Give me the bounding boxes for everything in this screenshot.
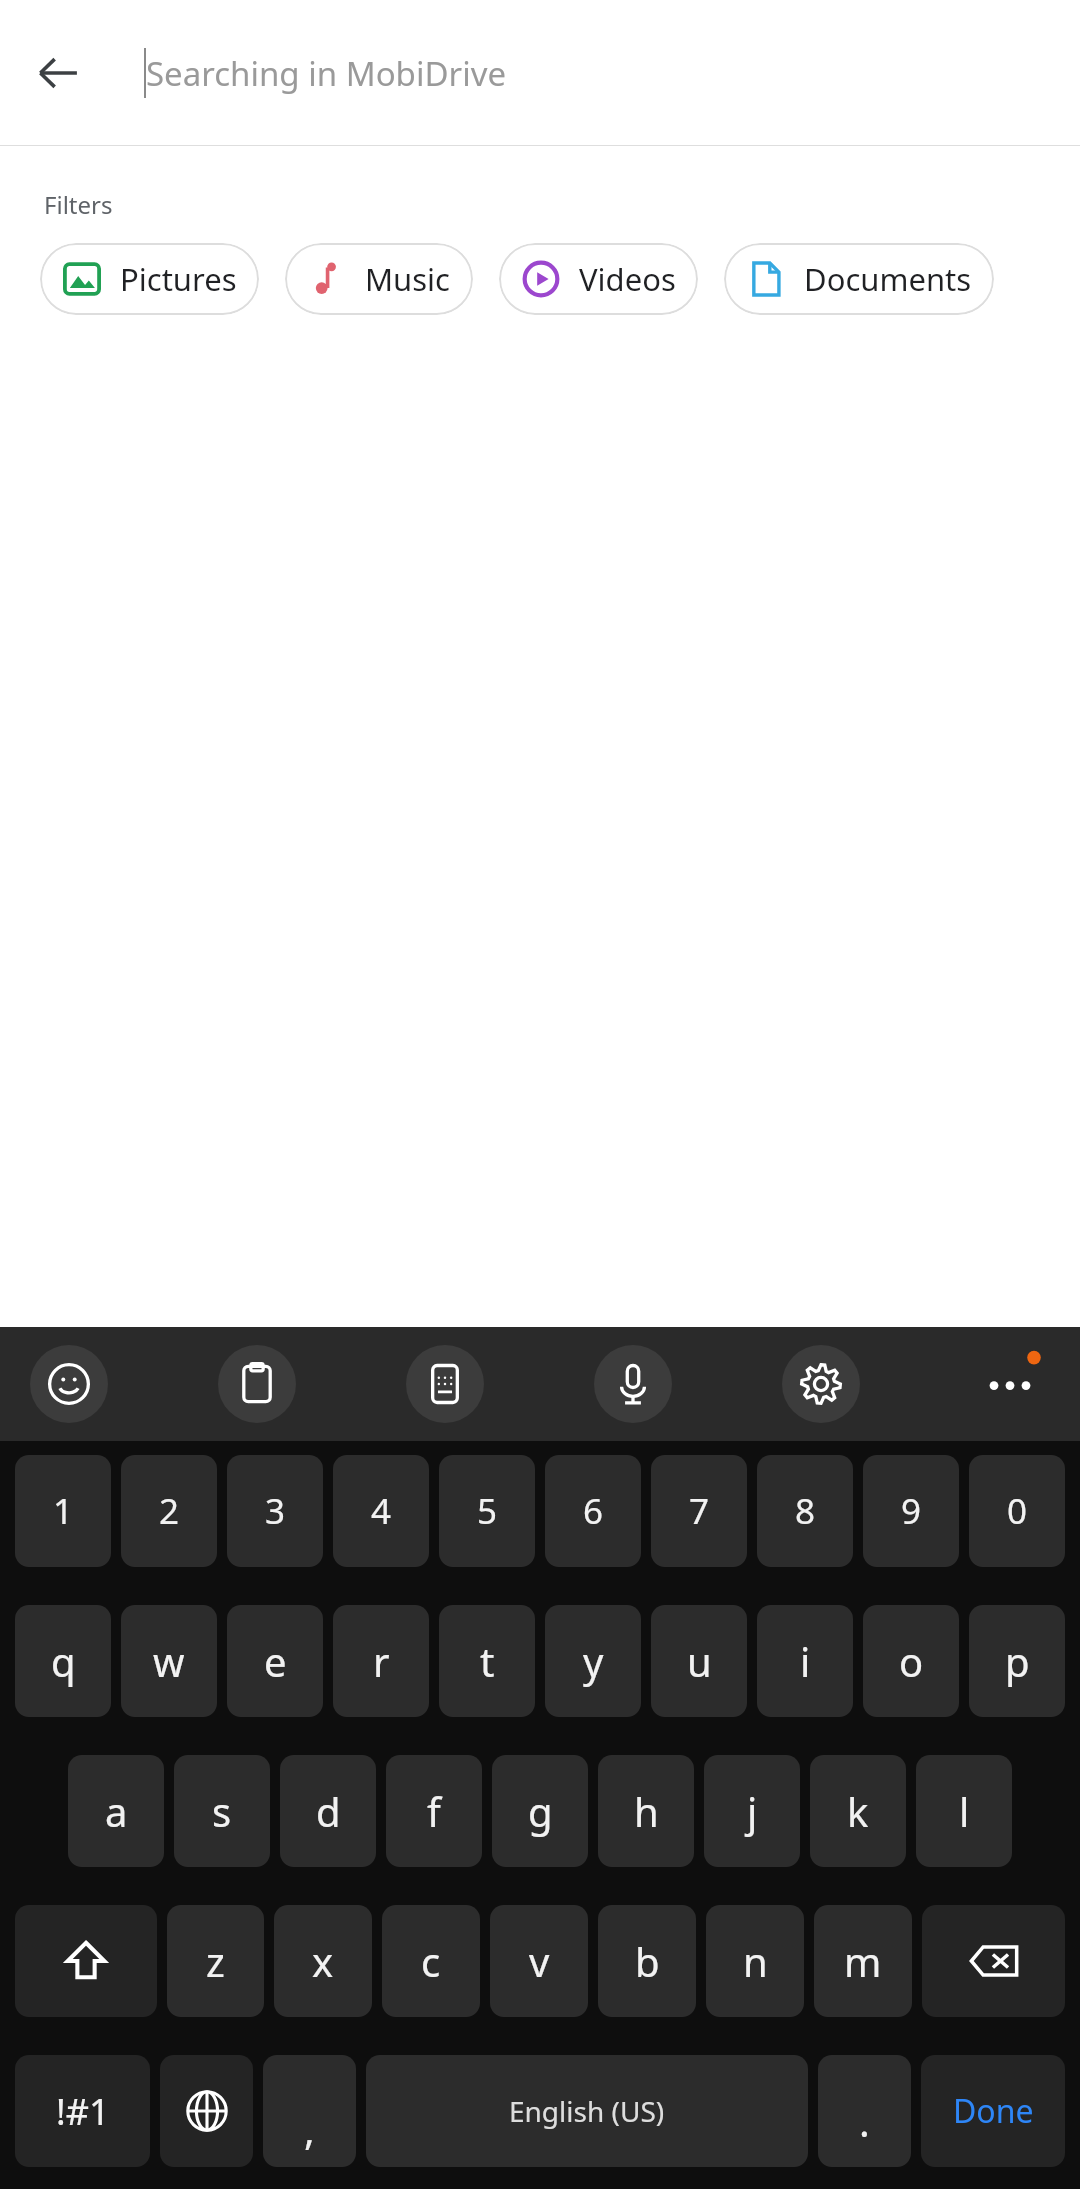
- staticText: n: [743, 1934, 768, 1988]
- staticText: d: [316, 1784, 341, 1838]
- button[interactable]: 8: [757, 1455, 853, 1567]
- staticText: c: [421, 1934, 441, 1988]
- button[interactable]: Done: [921, 2055, 1065, 2167]
- button[interactable]: Voice input: [594, 1345, 672, 1423]
- staticText: s: [212, 1784, 232, 1838]
- button[interactable]: e: [227, 1605, 323, 1717]
- button[interactable]: h: [598, 1755, 694, 1867]
- staticText: p: [1005, 1634, 1030, 1688]
- button[interactable]: g: [492, 1755, 588, 1867]
- staticText: 1: [53, 1487, 74, 1535]
- staticText: z: [206, 1934, 225, 1988]
- staticText: h: [634, 1784, 659, 1838]
- button[interactable]: !#1: [15, 2055, 150, 2167]
- button[interactable]: 1: [15, 1455, 111, 1567]
- button[interactable]: Settings: [782, 1345, 860, 1423]
- staticText: o: [899, 1634, 924, 1688]
- staticText: q: [51, 1634, 76, 1688]
- staticText: 8: [795, 1487, 816, 1535]
- button[interactable]: l: [916, 1755, 1012, 1867]
- button[interactable]: u: [651, 1605, 747, 1717]
- staticText: Done: [953, 2089, 1034, 2133]
- button[interactable]: w: [121, 1605, 217, 1717]
- staticText: Pictures: [120, 258, 237, 300]
- button[interactable]: f: [386, 1755, 482, 1867]
- staticText: u: [687, 1634, 712, 1688]
- button[interactable]: 2: [121, 1455, 217, 1567]
- button[interactable]: 9: [863, 1455, 959, 1567]
- button[interactable]: Back: [22, 37, 94, 109]
- staticText: f: [427, 1784, 441, 1838]
- staticText: Documents: [804, 258, 972, 300]
- staticText: 7: [689, 1487, 710, 1535]
- button[interactable]: m: [814, 1905, 912, 2017]
- button[interactable]: k: [810, 1755, 906, 1867]
- staticText: Music: [365, 258, 451, 300]
- button[interactable]: .: [818, 2055, 911, 2167]
- staticText: l: [959, 1784, 970, 1838]
- button[interactable]: 5: [439, 1455, 535, 1567]
- button[interactable]: t: [439, 1605, 535, 1717]
- button[interactable]: Videos: [499, 243, 698, 315]
- button[interactable]: Emoji: [30, 1345, 108, 1423]
- button[interactable]: 3: [227, 1455, 323, 1567]
- button[interactable]: r: [333, 1605, 429, 1717]
- button[interactable]: More options: [970, 1344, 1050, 1424]
- button[interactable]: 4: [333, 1455, 429, 1567]
- staticText: 0: [1007, 1487, 1028, 1535]
- button[interactable]: o: [863, 1605, 959, 1717]
- button[interactable]: Change language: [160, 2055, 253, 2167]
- button[interactable]: Clipboard: [218, 1345, 296, 1423]
- staticText: 5: [477, 1487, 498, 1535]
- staticText: i: [800, 1634, 811, 1688]
- button[interactable]: ,: [263, 2055, 356, 2167]
- staticText: Filters: [44, 188, 113, 221]
- button[interactable]: 0: [969, 1455, 1065, 1567]
- staticText: y: [583, 1634, 604, 1688]
- button[interactable]: n: [706, 1905, 804, 2017]
- button[interactable]: Music: [285, 243, 473, 315]
- staticText: !#1: [56, 2087, 110, 2136]
- staticText: w: [153, 1634, 185, 1688]
- button[interactable]: b: [598, 1905, 696, 2017]
- button[interactable]: j: [704, 1755, 800, 1867]
- staticText: v: [529, 1934, 550, 1988]
- button[interactable]: c: [382, 1905, 480, 2017]
- staticText: t: [480, 1634, 495, 1688]
- staticText: r: [373, 1634, 390, 1688]
- button[interactable]: z: [167, 1905, 264, 2017]
- button[interactable]: Backspace: [922, 1905, 1065, 2017]
- button[interactable]: q: [15, 1605, 111, 1717]
- staticText: m: [844, 1934, 882, 1988]
- button[interactable]: English (US): [366, 2055, 808, 2167]
- button[interactable]: d: [280, 1755, 376, 1867]
- staticText: ,: [304, 2102, 315, 2156]
- button[interactable]: x: [274, 1905, 372, 2017]
- staticText: 3: [265, 1487, 286, 1535]
- button[interactable]: 7: [651, 1455, 747, 1567]
- staticText: English (US): [509, 2092, 665, 2130]
- staticText: 2: [159, 1487, 180, 1535]
- button[interactable]: i: [757, 1605, 853, 1717]
- staticText: e: [264, 1634, 287, 1688]
- staticText: .: [859, 2094, 870, 2148]
- staticText: b: [635, 1934, 660, 1988]
- button[interactable]: v: [490, 1905, 588, 2017]
- staticText: Videos: [579, 258, 676, 300]
- staticText: k: [847, 1784, 869, 1838]
- button[interactable]: a: [68, 1755, 164, 1867]
- staticText: x: [312, 1934, 334, 1988]
- staticText: a: [105, 1784, 128, 1838]
- staticText: 9: [901, 1487, 922, 1535]
- staticText: j: [747, 1784, 758, 1838]
- button[interactable]: Pictures: [40, 243, 259, 315]
- button[interactable]: p: [969, 1605, 1065, 1717]
- button[interactable]: Shift: [15, 1905, 157, 2017]
- button[interactable]: s: [174, 1755, 270, 1867]
- staticText: g: [528, 1784, 553, 1838]
- button[interactable]: Documents: [724, 243, 994, 315]
- button[interactable]: 6: [545, 1455, 641, 1567]
- button[interactable]: Text editing: [406, 1345, 484, 1423]
- staticText: 4: [371, 1487, 392, 1535]
- button[interactable]: y: [545, 1605, 641, 1717]
